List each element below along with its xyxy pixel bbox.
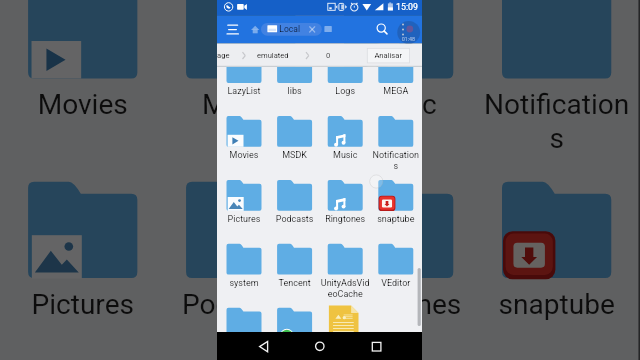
button[interactable] [323,244,374,290]
button[interactable] [323,52,374,98]
button[interactable] [222,244,273,290]
button[interactable] [272,244,323,290]
button[interactable] [272,116,323,162]
button[interactable] [373,308,424,354]
button[interactable] [272,52,323,98]
button[interactable] [272,180,323,226]
button[interactable] [373,244,424,290]
button[interactable]: More options [396,18,416,40]
button[interactable] [222,308,273,354]
button[interactable]: Home [248,20,268,40]
button[interactable] [373,180,424,226]
button[interactable] [222,116,273,162]
button[interactable]: Recent apps [365,334,387,358]
button[interactable]: Back [253,334,275,358]
button[interactable] [323,116,374,162]
button[interactable]: Search [372,18,392,40]
button[interactable]: Home [308,334,330,358]
button[interactable] [272,308,323,354]
button[interactable] [323,308,374,354]
button[interactable] [260,24,317,35]
button[interactable] [373,52,424,98]
button[interactable] [323,180,374,226]
button[interactable] [373,116,424,162]
button[interactable] [222,52,273,98]
button[interactable] [367,46,422,63]
button[interactable] [222,180,273,226]
button[interactable]: Open navigation menu [226,18,248,42]
